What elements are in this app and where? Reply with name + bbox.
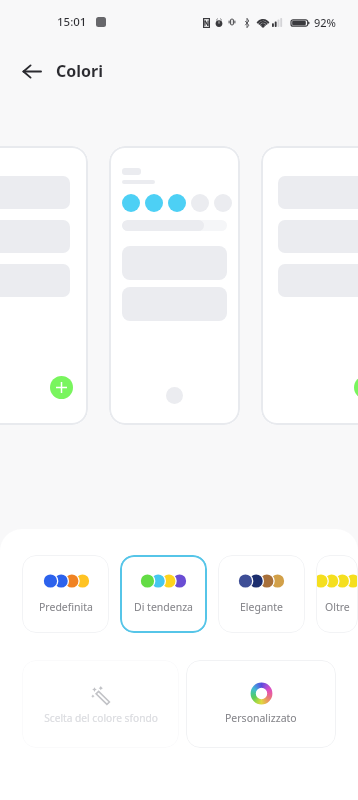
staticText: Di tendenza	[134, 600, 193, 614]
staticText: Colori	[56, 60, 103, 82]
button[interactable]: Scelta del colore sfondo	[22, 660, 179, 748]
button[interactable]: Back	[14, 53, 50, 89]
button[interactable]: Predefinita	[22, 555, 109, 633]
staticText: 15:01	[57, 14, 87, 30]
staticText: Elegante	[240, 600, 284, 614]
staticText: Oltre	[325, 600, 350, 614]
staticText: 92%	[314, 15, 336, 30]
button[interactable]: Oltre	[316, 555, 358, 633]
staticText: Predefinita	[39, 600, 93, 614]
button[interactable]	[109, 146, 240, 425]
button[interactable]: Di tendenza	[120, 555, 207, 633]
button[interactable]	[0, 146, 88, 425]
button[interactable]: Elegante	[218, 555, 305, 633]
staticText: Personalizzato	[225, 711, 297, 725]
button[interactable]	[261, 146, 358, 425]
button[interactable]: Personalizzato	[186, 660, 336, 748]
staticText: Scelta del colore sfondo	[44, 711, 158, 725]
